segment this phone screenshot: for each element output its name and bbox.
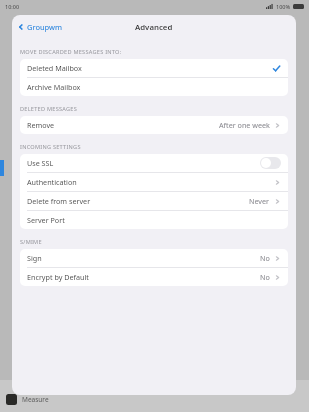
- staticText: Authentication: [27, 177, 77, 187]
- button[interactable]: Archive Mailbox: [20, 78, 288, 96]
- staticText: After one week: [219, 120, 270, 130]
- staticText: Measure: [22, 395, 49, 404]
- other: Back: [17, 23, 25, 31]
- button[interactable]: Deleted Mailbox: [20, 59, 288, 78]
- staticText: Remove: [27, 120, 55, 130]
- button[interactable]: Authentication: [20, 173, 288, 192]
- button[interactable]: Delete from server: [20, 192, 288, 211]
- button[interactable]: Measure: [6, 393, 49, 406]
- button[interactable]: Remove: [20, 116, 288, 134]
- staticText: S/MIME: [20, 238, 42, 246]
- button[interactable]: Sign: [20, 249, 288, 268]
- staticText: No: [260, 272, 270, 282]
- staticText: Sign: [27, 253, 42, 263]
- staticText: 10:00: [5, 3, 20, 10]
- staticText: Encrypt by Default: [27, 272, 89, 282]
- button[interactable]: Use SSL: [20, 154, 288, 173]
- staticText: Server Port: [27, 215, 65, 225]
- staticText: Advanced: [135, 22, 173, 33]
- button[interactable]: Back: [17, 22, 62, 32]
- staticText: Deleted Mailbox: [27, 63, 82, 73]
- staticText: DELETED MESSAGES: [20, 105, 78, 113]
- button[interactable]: Encrypt by Default: [20, 268, 288, 286]
- staticText: Archive Mailbox: [27, 82, 81, 92]
- button[interactable]: Server Port: [20, 211, 288, 229]
- staticText: Groupwm: [27, 22, 62, 32]
- staticText: Delete from server: [27, 196, 91, 206]
- staticText: Never: [249, 196, 270, 206]
- staticText: INCOMING SETTINGS: [20, 143, 81, 151]
- staticText: 100%: [276, 3, 291, 10]
- staticText: Use SSL: [27, 158, 54, 168]
- staticText: MOVE DISCARDED MESSAGES INTO:: [20, 48, 122, 56]
- other: Use SSL toggle: [260, 157, 281, 169]
- staticText: No: [260, 253, 270, 263]
